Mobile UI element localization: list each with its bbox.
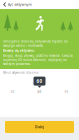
button[interactable]: Dalej	[5, 121, 74, 133]
staticText: Być aktywnym	[8, 2, 32, 7]
button[interactable]: Być aktywnym	[0, 0, 38, 9]
staticText: Umiejętnie dobieraj aktywności fizyczne …	[3, 39, 68, 48]
staticText: Dalej	[35, 125, 44, 129]
staticText: Bawmy się aktywnie:	[3, 49, 35, 53]
staticText: Minut aktywności dziennie	[3, 71, 39, 75]
staticText: Biegaj, skacz, pływaj, jeźdź na rowerze.…	[3, 53, 73, 66]
staticText: 30	[10, 90, 14, 94]
staticText: 90	[64, 90, 68, 94]
staticText: 60	[37, 90, 41, 94]
staticText: 60	[36, 78, 42, 84]
